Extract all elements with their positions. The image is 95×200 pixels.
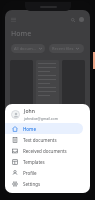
button[interactable]: Settings xyxy=(5,178,83,189)
button[interactable]: Text documents xyxy=(5,134,83,145)
staticText: Home xyxy=(11,29,32,39)
staticText: Recent files xyxy=(52,46,74,51)
staticText: All documents xyxy=(14,46,37,51)
button[interactable] xyxy=(36,60,59,107)
staticText: Received documents xyxy=(23,148,67,154)
staticText: Settings xyxy=(23,181,41,187)
button[interactable]: Profile xyxy=(5,167,83,178)
button[interactable]: Recent files xyxy=(49,44,84,53)
button[interactable]: All documents xyxy=(11,44,45,53)
button[interactable]: Account xyxy=(78,16,85,23)
staticText: johndoe@gmail.com xyxy=(24,116,58,121)
button[interactable]: Search xyxy=(69,16,76,23)
button[interactable] xyxy=(62,60,85,107)
staticText: Profile xyxy=(23,170,37,176)
staticText: Templates xyxy=(23,159,45,165)
staticText: Home xyxy=(23,126,36,132)
staticText: Text documents xyxy=(23,137,57,143)
staticText: John xyxy=(24,108,35,115)
button[interactable]: Templates xyxy=(5,156,83,167)
button[interactable]: Open navigation menu xyxy=(10,16,17,23)
button[interactable]: Home xyxy=(5,123,83,134)
button[interactable]: John xyxy=(5,107,90,121)
staticText: Recently opened documents xyxy=(11,111,65,116)
button[interactable]: Received documents xyxy=(5,145,83,156)
button[interactable] xyxy=(10,60,33,107)
